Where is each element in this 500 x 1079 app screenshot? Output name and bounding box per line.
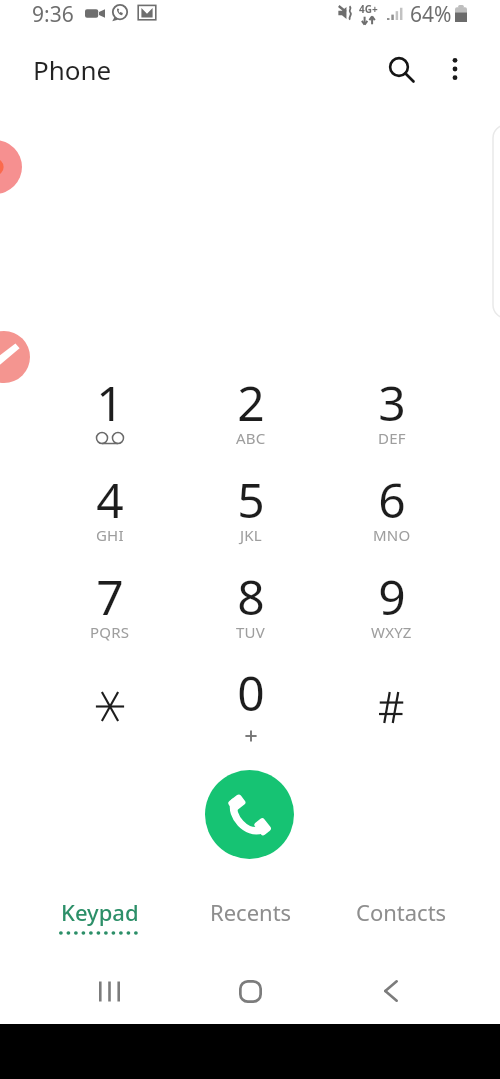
staticText: 64%: [410, 0, 452, 26]
staticText: WXYZ: [371, 622, 412, 642]
button[interactable]: 4: [39, 461, 180, 557]
staticText: TUV: [236, 622, 265, 642]
staticText: 3: [378, 370, 406, 435]
button[interactable]: Call: [205, 770, 294, 859]
staticText: Recents: [210, 897, 292, 927]
button[interactable]: Recent apps: [74, 961, 144, 1021]
button[interactable]: 9: [321, 558, 462, 654]
button[interactable]: 6: [321, 461, 462, 557]
staticText: GHI: [96, 525, 124, 545]
button[interactable]: 2: [180, 364, 321, 460]
button[interactable]: Search: [379, 47, 423, 91]
button[interactable]: Keypad: [30, 890, 170, 938]
staticText: Keypad: [61, 897, 139, 927]
button[interactable]: Contacts: [331, 890, 471, 938]
staticText: 9:36: [32, 0, 74, 26]
staticText: 8: [237, 564, 265, 629]
staticText: Phone: [33, 52, 112, 87]
staticText: 5: [237, 467, 265, 532]
staticText: 0: [237, 660, 265, 725]
button[interactable]: Back: [356, 961, 426, 1021]
staticText: DEF: [378, 428, 406, 448]
button[interactable]: Screen recorder: [0, 140, 22, 194]
button[interactable]: 7: [39, 558, 180, 654]
button[interactable]: Home: [215, 961, 285, 1021]
staticText: 9: [378, 564, 406, 629]
button[interactable]: Recents: [181, 890, 321, 938]
button[interactable]: 3: [321, 364, 462, 460]
staticText: 1: [96, 370, 124, 435]
button[interactable]: 1: [39, 364, 180, 460]
staticText: 4: [96, 467, 124, 532]
button[interactable]: More options: [433, 47, 477, 91]
button[interactable]: 0: [180, 654, 321, 750]
staticText: 2: [237, 370, 265, 435]
staticText: MNO: [373, 525, 411, 545]
staticText: JKL: [240, 525, 262, 545]
staticText: 6: [378, 467, 406, 532]
staticText: 7: [96, 564, 124, 629]
staticText: 4G+: [359, 2, 378, 16]
button[interactable]: 8: [180, 558, 321, 654]
button[interactable]: Pound: [321, 654, 462, 750]
staticText: PQRS: [90, 622, 130, 642]
staticText: ABC: [236, 428, 266, 448]
staticText: Contacts: [356, 897, 447, 927]
button[interactable]: Star: [39, 654, 180, 750]
button[interactable]: 5: [180, 461, 321, 557]
button[interactable]: Draw: [0, 331, 30, 383]
